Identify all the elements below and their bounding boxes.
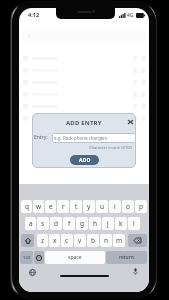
staticText: c <box>65 236 69 245</box>
staticText: return <box>119 254 134 261</box>
button[interactable]: e.g. Pack phone chargers <box>52 133 136 143</box>
button[interactable]: s <box>37 217 49 230</box>
staticText: j <box>107 219 109 228</box>
staticText: o <box>126 202 130 211</box>
button[interactable]: k <box>115 217 127 230</box>
staticText: k <box>119 219 123 228</box>
staticText: d <box>54 219 58 228</box>
button[interactable]: p <box>135 200 147 213</box>
button[interactable]: ADD <box>70 155 99 165</box>
staticText: ADD <box>79 157 91 164</box>
button[interactable]: j <box>102 217 114 230</box>
staticText: n <box>104 236 109 245</box>
button[interactable]: w <box>33 200 44 213</box>
staticText: w <box>36 202 42 211</box>
staticText: x <box>53 236 57 245</box>
button[interactable]: n <box>100 234 112 247</box>
staticText: 4G <box>127 12 134 19</box>
staticText: e <box>49 202 53 211</box>
button[interactable]: c <box>61 234 73 247</box>
staticText: e.g. Pack phone chargers <box>54 135 108 141</box>
button[interactable]: Emoji <box>34 251 44 264</box>
button[interactable]: y <box>83 200 95 213</box>
button[interactable]: h <box>89 217 101 230</box>
button[interactable]: g <box>76 217 88 230</box>
staticText: 4:12 <box>28 11 40 19</box>
staticText: f <box>68 219 71 228</box>
button[interactable]: e <box>45 200 56 213</box>
staticText: Entry: <box>34 134 48 141</box>
button[interactable]: space <box>45 251 105 264</box>
button[interactable]: m <box>113 234 125 247</box>
other: Back <box>27 34 32 39</box>
staticText: space <box>68 254 82 261</box>
button[interactable]: 123 <box>20 251 33 264</box>
button[interactable]: f <box>63 217 75 230</box>
button[interactable]: d <box>50 217 62 230</box>
button[interactable]: v <box>74 234 86 247</box>
staticText: g <box>80 219 84 228</box>
button[interactable] <box>23 112 145 124</box>
button[interactable]: t <box>70 200 82 213</box>
staticText: z <box>41 236 45 245</box>
staticText: p <box>139 202 143 211</box>
staticText: s <box>41 219 45 228</box>
staticText: v <box>78 236 82 245</box>
button[interactable]: l <box>128 217 140 230</box>
button[interactable]: Backspace <box>128 234 147 247</box>
button[interactable]: z <box>37 234 48 247</box>
button[interactable]: u <box>96 200 108 213</box>
staticText: a <box>29 219 33 228</box>
staticText: h <box>93 219 98 228</box>
staticText: r <box>62 202 65 211</box>
staticText: i <box>114 202 116 211</box>
button[interactable]: i <box>109 200 121 213</box>
button[interactable]: Shift <box>21 234 34 247</box>
button[interactable]: a <box>25 217 36 230</box>
staticText: l <box>133 219 135 228</box>
staticText: Character count: 0/100 <box>89 145 132 150</box>
staticText: q <box>25 202 29 211</box>
button[interactable]: r <box>57 200 69 213</box>
button[interactable]: Close <box>124 116 136 128</box>
staticText: t <box>75 202 78 211</box>
button[interactable]: b <box>87 234 99 247</box>
button[interactable]: return <box>106 251 147 264</box>
staticText: m <box>116 236 123 245</box>
staticText: y <box>87 202 91 211</box>
button[interactable]: Change keyboard <box>27 267 38 278</box>
button[interactable]: o <box>122 200 134 213</box>
staticText: u <box>100 202 105 211</box>
staticText: ADD ENTRY <box>66 119 102 127</box>
button[interactable]: x <box>49 234 60 247</box>
button[interactable]: Dictation <box>130 266 141 277</box>
staticText: 123 <box>23 255 31 261</box>
button[interactable]: q <box>21 200 32 213</box>
staticText: b <box>91 236 95 245</box>
